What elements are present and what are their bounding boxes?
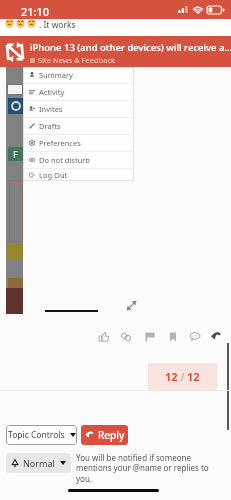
button[interactable]: Topic Controls: [6, 425, 77, 445]
staticText: Topic Controls: [8, 429, 65, 441]
staticText: /: [178, 370, 187, 384]
staticText: . It works: [39, 19, 76, 31]
staticText: Do not disturb: [39, 155, 90, 165]
button[interactable]: 12: [148, 363, 217, 390]
button[interactable]: Share: [207, 328, 224, 345]
button[interactable]: Like: [95, 328, 112, 345]
button[interactable]: Reply: [186, 328, 203, 345]
staticText: 21:10: [21, 4, 50, 19]
staticText: Drafts: [39, 121, 61, 131]
staticText: 12: [187, 369, 200, 384]
button[interactable]: Copy link: [117, 328, 134, 345]
staticText: F: [13, 148, 18, 160]
staticText: 12: [165, 369, 178, 384]
staticText: Preferences: [39, 138, 81, 148]
button[interactable]: Activity: [23, 84, 134, 100]
staticText: Normal: [23, 457, 55, 469]
staticText: Reply: [98, 428, 125, 442]
button[interactable]: Bookmark: [164, 328, 181, 345]
staticText: Activity: [39, 87, 65, 97]
staticText: Site News & Feedback: [38, 55, 115, 65]
button[interactable]: Invites: [23, 101, 134, 117]
button[interactable]: Drafts: [23, 118, 134, 134]
button[interactable]: Do not disturb: [23, 152, 134, 168]
staticText: You will be notified if someone mentions…: [76, 452, 224, 485]
button[interactable]: Normal: [6, 453, 71, 473]
staticText: iPhone 13 (and other devices) will recei…: [30, 41, 231, 54]
button[interactable]: iPhone 13 (and other devices) will recei…: [0, 36, 231, 67]
button[interactable]: Log Out: [23, 169, 134, 181]
button[interactable]: Preferences: [23, 135, 134, 151]
button[interactable]: Summary: [23, 67, 134, 83]
button[interactable]: Flag: [141, 328, 158, 345]
staticText: Invites: [39, 104, 63, 114]
button[interactable]: Reply: [81, 425, 128, 445]
staticText: Summary: [39, 70, 73, 80]
staticText: Log Out: [39, 170, 68, 180]
